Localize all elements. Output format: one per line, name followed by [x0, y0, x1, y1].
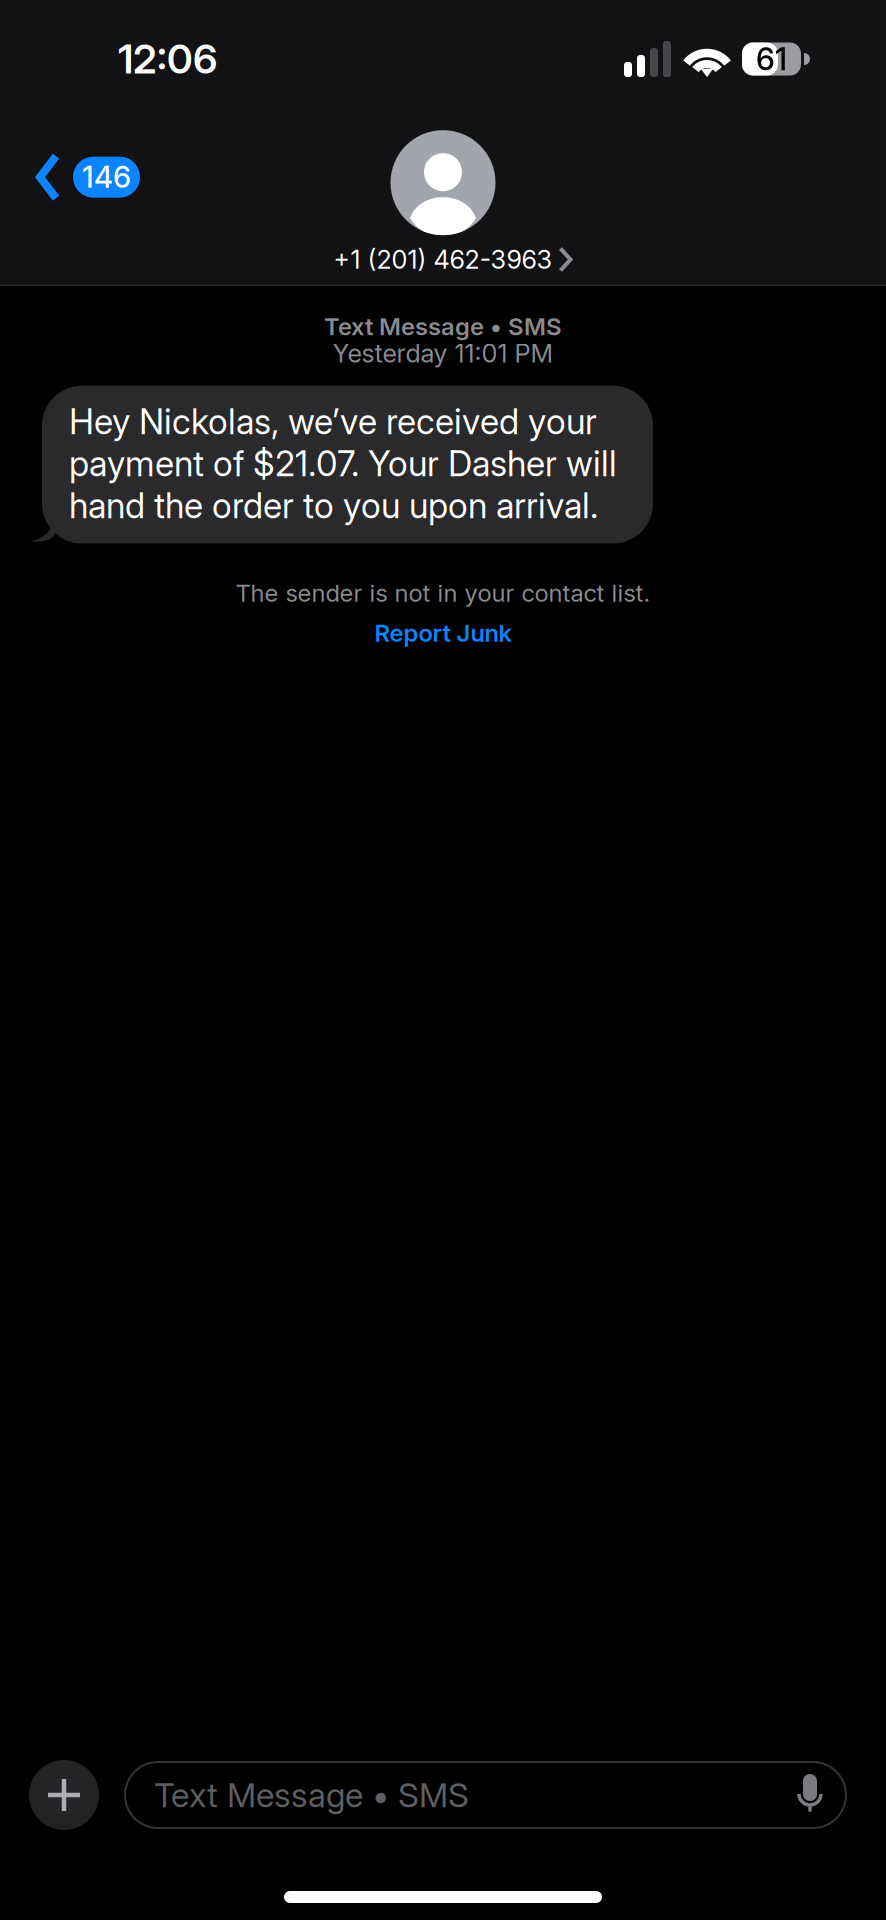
- staticText: The sender is not in your contact list.: [235, 578, 650, 607]
- staticText: Hey Nickolas, we’ve received your paymen…: [69, 401, 617, 526]
- staticText: Text Message • SMS: [324, 312, 562, 341]
- staticText: +1 (201) 462-3963: [333, 244, 552, 275]
- staticText: 146: [82, 159, 131, 195]
- staticText: Report Junk: [374, 619, 511, 648]
- staticText: Text Message • SMS: [154, 1775, 469, 1815]
- button[interactable]: Back, 146 conversations: [0, 139, 162, 215]
- button[interactable]: Dictate: [798, 1774, 822, 1816]
- button[interactable]: Add attachment: [29, 1760, 99, 1830]
- staticText: Yesterday 11:01 PM: [332, 338, 553, 369]
- staticText: 61: [756, 40, 787, 77]
- staticText: 12:06: [118, 35, 217, 83]
- button[interactable]: Report Junk: [360, 615, 525, 652]
